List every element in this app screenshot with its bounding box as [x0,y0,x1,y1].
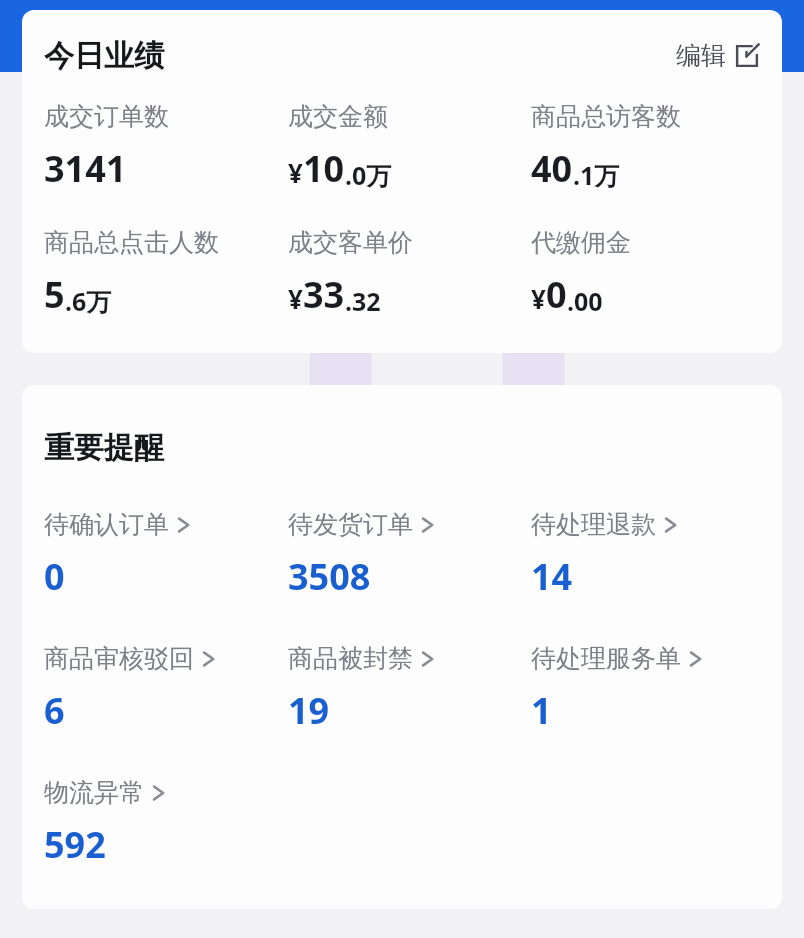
button[interactable]: 待发货订单 [288,509,531,601]
staticText: 待处理退款 [531,509,656,540]
button[interactable]: 商品被封禁 [288,643,531,735]
staticText: 成交金额 [288,101,388,132]
staticText: 代缴佣金 [531,227,631,258]
button[interactable]: 待处理退款 [531,509,774,601]
staticText: 14 [531,552,573,601]
staticText: 重要提醒 [44,429,164,467]
staticText: 0 [546,270,567,319]
button[interactable]: 待处理服务单 [531,643,774,735]
button[interactable]: 物流异常 [44,777,288,869]
staticText: 商品总访客数 [531,101,681,132]
staticText: 商品审核驳回 [44,643,194,674]
staticText: ¥ [288,155,303,190]
staticText: 3508 [288,552,371,601]
staticText: ¥ [288,281,303,316]
staticText: 10 [303,144,345,193]
button[interactable]: 待确认订单 [44,509,288,601]
staticText: 592 [44,820,106,869]
staticText: 商品总点击人数 [44,227,219,258]
staticText: 5 [44,270,65,319]
staticText: 成交订单数 [44,101,169,132]
staticText: 40 [531,144,573,193]
button[interactable]: 编辑 [670,36,766,75]
staticText: 6 [44,686,65,735]
staticText: .00 [567,284,603,318]
staticText: .6万 [65,284,112,318]
staticText: .1万 [573,158,620,192]
button[interactable]: 商品审核驳回 [44,643,288,735]
staticText: .32 [345,284,381,318]
staticText: ¥ [531,281,546,316]
staticText: 今日业绩 [44,37,164,75]
staticText: 商品被封禁 [288,643,413,674]
staticText: .0万 [345,158,392,192]
staticText: 0 [44,552,65,601]
staticText: 19 [288,686,330,735]
staticText: 物流异常 [44,777,144,808]
staticText: 待发货订单 [288,509,413,540]
staticText: 待确认订单 [44,509,169,540]
staticText: 33 [303,270,345,319]
other: 编辑 [734,43,760,69]
staticText: 编辑 [676,40,726,71]
staticText: 3141 [44,144,127,193]
staticText: 1 [531,686,552,735]
staticText: 成交客单价 [288,227,413,258]
staticText: 待处理服务单 [531,643,681,674]
